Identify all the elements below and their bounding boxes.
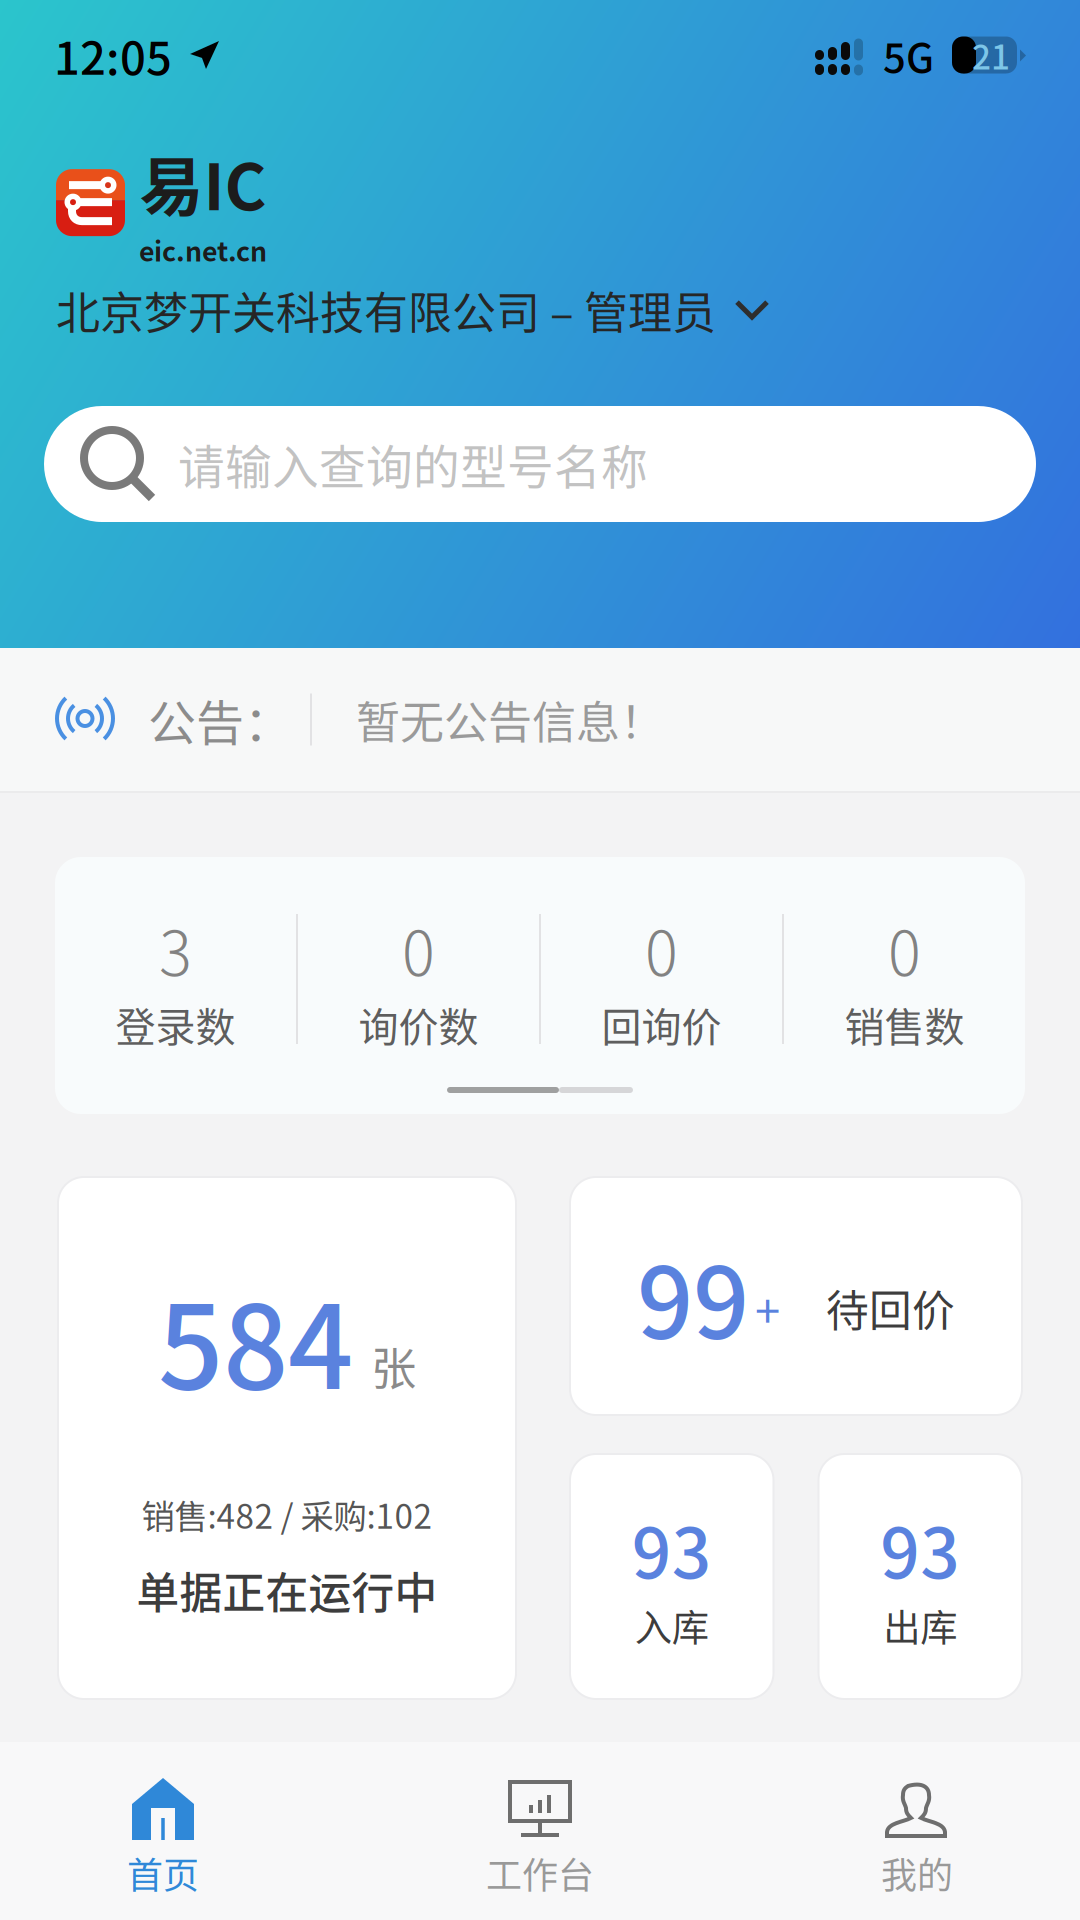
button[interactable]: 93 [818, 1454, 1022, 1699]
button[interactable]: 99 [570, 1177, 1022, 1415]
button[interactable]: 我的 [754, 1742, 1080, 1920]
staticText: 销售:482 / 采购:102 [141, 1490, 432, 1538]
staticText: 3 [159, 905, 192, 993]
staticText: 易IC [139, 136, 266, 229]
staticText: 请输入查询的型号名称 [178, 430, 648, 498]
staticText: 0 [645, 905, 678, 993]
staticText: 首页 [127, 1847, 199, 1899]
button[interactable]: 93 [570, 1454, 773, 1699]
staticText: 公告： [148, 685, 292, 754]
staticText: eic.net.cn [139, 231, 267, 269]
button[interactable]: 584 [58, 1177, 516, 1699]
staticText: 入库 [635, 1598, 709, 1652]
staticText: 销售数 [844, 995, 964, 1053]
staticText: 暂无公告信息！ [356, 688, 664, 751]
staticText: 93 [880, 1498, 960, 1598]
staticText: + [755, 1275, 780, 1341]
button[interactable]: 首页 [0, 1742, 326, 1920]
staticText: 北京梦开关科技有限公司 – 管理员 [56, 278, 716, 342]
staticText: 张 [371, 1333, 416, 1399]
staticText: 待回价 [826, 1277, 955, 1339]
staticText: 12:05 [54, 22, 172, 88]
staticText: 21 [972, 31, 1010, 79]
staticText: 出库 [883, 1598, 957, 1652]
button[interactable]: 工作台 [326, 1742, 754, 1920]
staticText: 回询价 [601, 995, 721, 1053]
staticText: 询价数 [358, 995, 478, 1053]
staticText: 0 [888, 905, 921, 993]
staticText: 584 [158, 1256, 353, 1422]
staticText: 99 [637, 1225, 749, 1367]
staticText: 93 [632, 1498, 712, 1598]
staticText: 我的 [881, 1847, 953, 1899]
staticText: 登录数 [115, 995, 235, 1053]
staticText: 5G [883, 26, 934, 84]
staticText: 单据正在运行中 [136, 1559, 437, 1621]
staticText: 0 [402, 905, 435, 993]
staticText: 工作台 [486, 1847, 594, 1899]
